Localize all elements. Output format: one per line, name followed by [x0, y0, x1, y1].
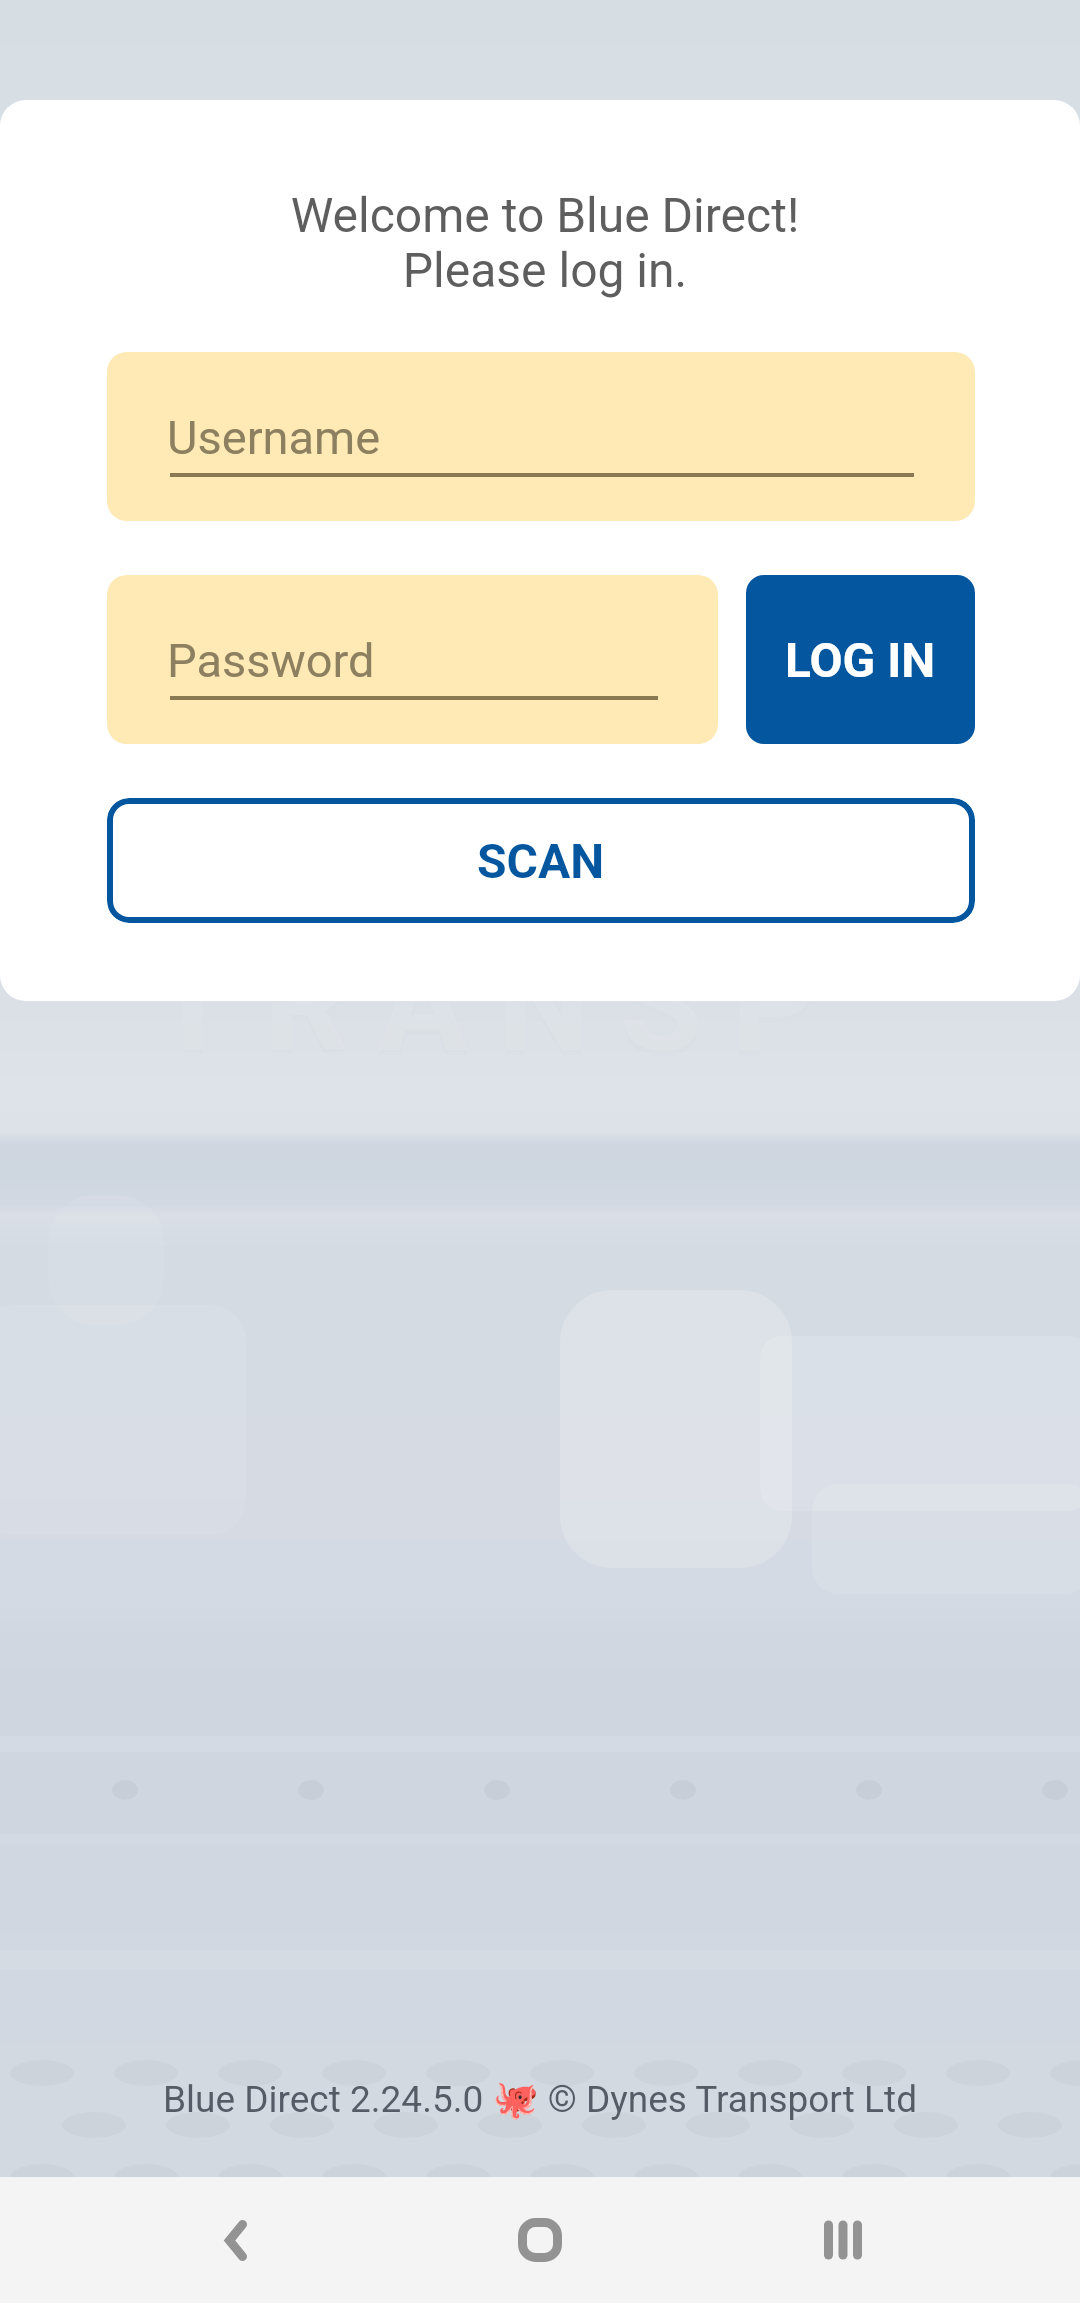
button[interactable]: LOG IN — [746, 575, 975, 744]
button[interactable]: Recents — [773, 2177, 913, 2303]
button[interactable]: SCAN — [107, 798, 975, 923]
button[interactable]: Password — [107, 575, 718, 744]
staticText: Welcome to Blue Direct! Please log in. — [5, 187, 1080, 299]
staticText: Password — [167, 633, 375, 688]
button[interactable]: Home — [470, 2177, 610, 2303]
staticText: Username — [167, 410, 381, 465]
button[interactable]: Back — [166, 2177, 306, 2303]
staticText: TRANSP — [152, 933, 847, 1088]
staticText: SCAN — [477, 833, 605, 889]
staticText: TRANSP — [152, 928, 847, 1083]
staticText: LOG IN — [785, 632, 936, 688]
button[interactable]: Username — [107, 352, 975, 521]
staticText: Blue Direct 2.24.5.0 🐙 © Dynes Transport… — [0, 2078, 1080, 2121]
